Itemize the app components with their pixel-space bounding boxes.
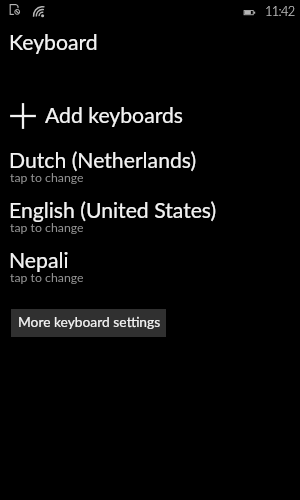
- staticText: tap to change: [10, 220, 84, 235]
- staticText: English (United States): [9, 197, 217, 222]
- staticText: tap to change: [10, 170, 84, 185]
- staticText: 11:42: [265, 3, 295, 18]
- staticText: tap to change: [10, 270, 84, 285]
- button[interactable]: English (United States): [0, 202, 300, 242]
- button[interactable]: More keyboard settings: [11, 309, 166, 337]
- other: No SIM card: [6, 0, 24, 22]
- other: Wi-Fi signal: [31, 0, 47, 22]
- staticText: More keyboard settings: [18, 313, 161, 330]
- button[interactable]: Dutch (Netherlands): [0, 152, 300, 192]
- staticText: Dutch (Netherlands): [9, 147, 197, 172]
- staticText: Nepali: [9, 247, 69, 272]
- other: Battery: [240, 0, 258, 22]
- staticText: Keyboard: [9, 29, 98, 54]
- button[interactable]: Nepali: [0, 252, 300, 292]
- button[interactable]: Add keyboards: [0, 101, 300, 133]
- staticText: Add keyboards: [45, 102, 184, 127]
